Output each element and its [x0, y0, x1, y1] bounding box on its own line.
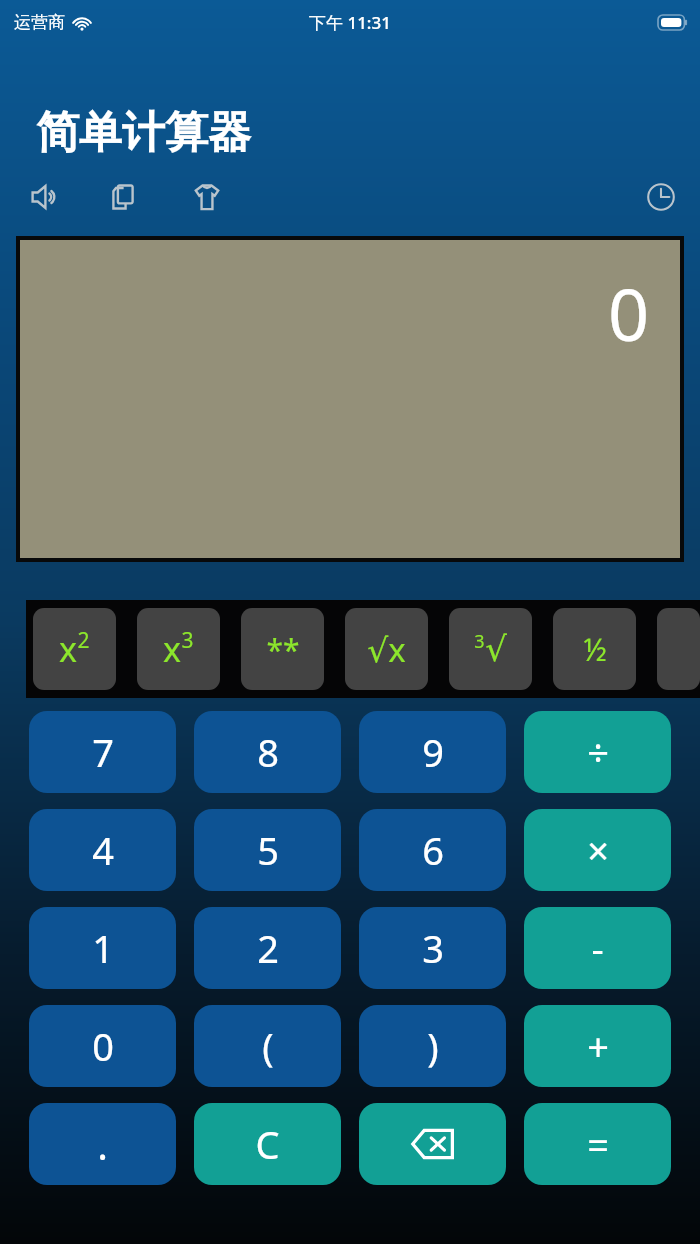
- staticText: 下午 11:31: [309, 11, 391, 34]
- button[interactable]: **: [241, 608, 324, 690]
- staticText: ): [427, 1020, 439, 1072]
- staticText: **: [266, 629, 300, 670]
- staticText: 5: [257, 824, 279, 876]
- button[interactable]: 7: [29, 711, 176, 793]
- staticText: 3: [474, 629, 485, 654]
- staticText: ×: [587, 824, 609, 876]
- staticText: 1: [92, 922, 114, 974]
- staticText: x: [163, 626, 181, 672]
- button[interactable]: Sound: [16, 174, 62, 220]
- staticText: 7: [92, 726, 114, 778]
- button[interactable]: 2: [194, 907, 341, 989]
- button[interactable]: 9: [359, 711, 506, 793]
- button[interactable]: Theme: [184, 174, 230, 220]
- button[interactable]: x: [137, 608, 220, 690]
- staticText: √x: [367, 627, 406, 672]
- staticText: ÷: [587, 726, 609, 778]
- button[interactable]: 6: [359, 809, 506, 891]
- button[interactable]: ×: [524, 809, 671, 891]
- staticText: .: [97, 1117, 108, 1171]
- button[interactable]: 4: [29, 809, 176, 891]
- button[interactable]: (: [194, 1005, 341, 1087]
- staticText: =: [587, 1118, 609, 1170]
- button[interactable]: 1: [29, 907, 176, 989]
- staticText: 0: [92, 1020, 114, 1072]
- button[interactable]: ): [359, 1005, 506, 1087]
- button[interactable]: ½: [553, 608, 636, 690]
- button[interactable]: Backspace: [359, 1103, 506, 1185]
- button[interactable]: History: [638, 174, 684, 220]
- staticText: 运营商: [14, 12, 65, 33]
- staticText: 2: [77, 626, 90, 655]
- button[interactable]: +: [524, 1005, 671, 1087]
- staticText: √: [485, 629, 507, 669]
- button[interactable]: 0: [29, 1005, 176, 1087]
- staticText: C: [255, 1118, 280, 1170]
- staticText: 3: [422, 922, 444, 974]
- staticText: +: [587, 1020, 609, 1072]
- staticText: x: [59, 626, 77, 672]
- button[interactable]: 3: [359, 907, 506, 989]
- button[interactable]: ÷: [524, 711, 671, 793]
- staticText: -: [591, 922, 604, 974]
- staticText: 8: [257, 726, 279, 778]
- staticText: 6: [422, 824, 444, 876]
- button[interactable]: x: [33, 608, 116, 690]
- button[interactable]: [657, 608, 700, 690]
- button[interactable]: 8: [194, 711, 341, 793]
- button[interactable]: .: [29, 1103, 176, 1185]
- button[interactable]: C: [194, 1103, 341, 1185]
- button[interactable]: =: [524, 1103, 671, 1185]
- staticText: 0: [608, 264, 650, 362]
- button[interactable]: -: [524, 907, 671, 989]
- button[interactable]: 3: [449, 608, 532, 690]
- staticText: 3: [181, 626, 194, 655]
- button[interactable]: 5: [194, 809, 341, 891]
- staticText: (: [262, 1020, 274, 1072]
- staticText: 9: [422, 726, 444, 778]
- staticText: 4: [92, 824, 114, 876]
- button[interactable]: √x: [345, 608, 428, 690]
- staticText: 2: [257, 922, 279, 974]
- button[interactable]: Copy: [100, 174, 146, 220]
- staticText: ½: [583, 629, 607, 670]
- staticText: 简单计算器: [36, 106, 251, 160]
